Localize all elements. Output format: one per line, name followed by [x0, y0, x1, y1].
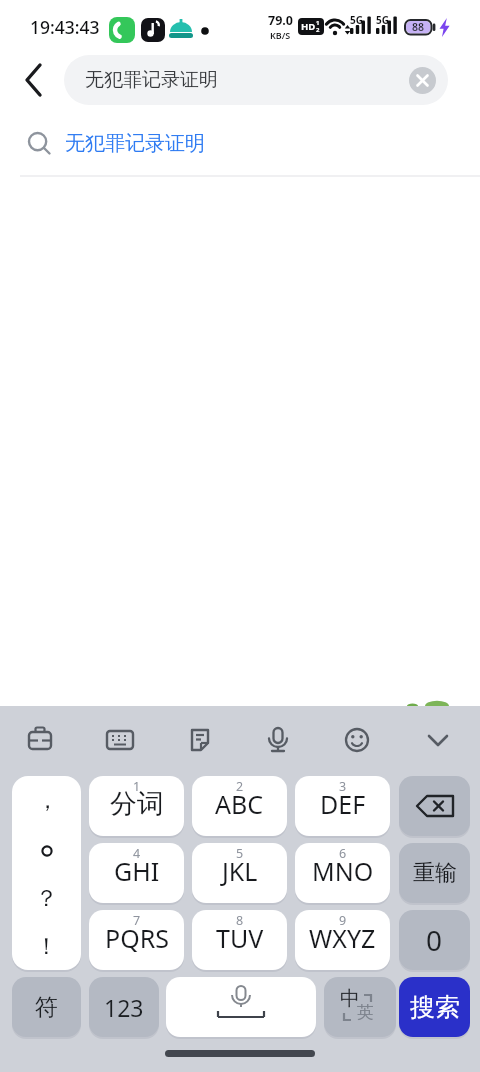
- staticText: ！: [35, 932, 58, 961]
- staticText: 英: [357, 1002, 374, 1023]
- staticText: 分词: [110, 787, 164, 821]
- button[interactable]: 符: [12, 977, 81, 1037]
- staticText: ABC: [215, 787, 264, 821]
- button[interactable]: 0: [399, 910, 470, 970]
- staticText: KB/S: [270, 29, 291, 41]
- button[interactable]: [414, 716, 462, 764]
- staticText: 中: [340, 986, 360, 1011]
- staticText: 3: [339, 778, 347, 795]
- staticText: 8: [236, 912, 244, 929]
- staticText: 2: [316, 26, 320, 34]
- staticText: 5G: [350, 13, 363, 27]
- staticText: WXYZ: [309, 921, 376, 955]
- staticText: 123: [104, 992, 144, 1023]
- staticText: GHI: [114, 854, 160, 888]
- button[interactable]: [409, 67, 436, 94]
- button[interactable]: 5: [192, 843, 287, 903]
- staticText: 2: [236, 778, 244, 795]
- staticText: 79.0: [268, 12, 293, 29]
- button[interactable]: 4: [89, 843, 184, 903]
- staticText: 无犯罪记录证明: [65, 131, 205, 156]
- staticText: 5: [236, 845, 244, 862]
- button[interactable]: 无犯罪记录证明: [64, 55, 448, 105]
- button[interactable]: 8: [192, 910, 287, 970]
- staticText: PQRS: [105, 921, 169, 955]
- button[interactable]: 3: [295, 776, 390, 836]
- staticText: HD: [301, 20, 316, 33]
- staticText: JKL: [222, 854, 258, 888]
- button[interactable]: 9: [295, 910, 390, 970]
- staticText: 7: [133, 912, 141, 929]
- button[interactable]: [14, 60, 56, 100]
- staticText: 6: [339, 845, 347, 862]
- staticText: 1: [133, 778, 141, 795]
- staticText: 5G: [376, 13, 389, 27]
- staticText: 符: [35, 993, 58, 1022]
- staticText: 0: [426, 921, 443, 959]
- button[interactable]: [166, 977, 316, 1037]
- staticText: 9: [339, 912, 347, 929]
- button[interactable]: [333, 716, 381, 764]
- button[interactable]: 无犯罪记录证明: [0, 112, 480, 175]
- button[interactable]: 中: [324, 977, 396, 1037]
- staticText: 无犯罪记录证明: [85, 68, 218, 92]
- staticText: 搜索: [410, 992, 460, 1023]
- staticText: DEF: [320, 787, 366, 821]
- button[interactable]: 搜索: [399, 977, 470, 1037]
- staticText: 重输: [413, 859, 457, 887]
- button[interactable]: 6: [295, 843, 390, 903]
- staticText: 88: [412, 20, 425, 34]
- button[interactable]: 7: [89, 910, 184, 970]
- staticText: MNO: [312, 854, 374, 888]
- staticText: 4: [133, 845, 141, 862]
- staticText: ？: [35, 884, 58, 913]
- button[interactable]: [96, 716, 144, 764]
- button[interactable]: ，: [12, 776, 81, 970]
- button[interactable]: [16, 716, 64, 764]
- button[interactable]: 123: [89, 977, 159, 1037]
- button[interactable]: 重输: [399, 843, 470, 903]
- staticText: 1: [316, 19, 320, 27]
- button[interactable]: 1: [89, 776, 184, 836]
- staticText: ，: [36, 786, 59, 815]
- button[interactable]: [254, 716, 302, 764]
- staticText: TUV: [216, 921, 264, 955]
- button[interactable]: [176, 716, 224, 764]
- staticText: 19:43:43: [30, 15, 100, 39]
- button[interactable]: [399, 776, 470, 836]
- button[interactable]: 2: [192, 776, 287, 836]
